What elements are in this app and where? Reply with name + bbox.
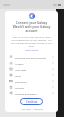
button[interactable]: Sharing and offers — [8, 90, 55, 96]
button[interactable]: Continue — [20, 98, 43, 105]
button[interactable]: Personal info and contacts — [8, 54, 55, 60]
button[interactable]: Activity — [8, 60, 55, 66]
staticText: Connect your Galaxy Watch5 with your Gal… — [10, 21, 53, 33]
staticText: Activity — [15, 62, 52, 65]
staticText: Sharing and offers — [15, 92, 52, 95]
staticText: Continue — [26, 100, 38, 104]
button[interactable]: Your data — [8, 66, 55, 72]
staticText: Apps — [15, 74, 52, 77]
button[interactable]: Not now · Settings — [21, 107, 43, 110]
staticText: Sign in to sync your settings, apps and … — [10, 35, 53, 47]
other: Account logo — [29, 13, 35, 19]
staticText: Security — [15, 86, 52, 89]
staticText: Payments — [15, 80, 52, 83]
button[interactable]: Apps — [8, 72, 55, 78]
staticText: Your data — [15, 68, 52, 71]
button[interactable]: Security — [8, 84, 55, 90]
staticText: Personal info and contacts — [15, 56, 52, 59]
button[interactable]: Payments — [8, 78, 55, 84]
button[interactable]: Learn more — [25, 48, 38, 51]
